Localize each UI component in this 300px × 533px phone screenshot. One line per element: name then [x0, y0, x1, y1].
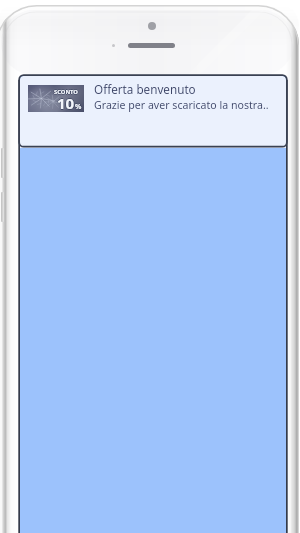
staticText: Offerta benvenuto [94, 81, 196, 97]
staticText: 10 [57, 93, 75, 113]
staticText: SCONTO [54, 88, 78, 96]
staticText: % [74, 102, 81, 112]
staticText: SCONTO [55, 88, 79, 96]
staticText: 10 [57, 94, 75, 114]
staticText: Grazie per aver scaricato la nostra.. [94, 98, 269, 112]
staticText: 10 [57, 92, 75, 112]
staticText: % [76, 102, 83, 112]
staticText: % [75, 102, 82, 112]
staticText: SCONTO [54, 87, 78, 95]
button[interactable]: SCONTO [20, 76, 286, 148]
staticText: 10 [56, 93, 74, 113]
staticText: SCONTO [54, 89, 78, 97]
staticText: % [75, 103, 82, 113]
staticText: SCONTO [53, 88, 77, 96]
staticText: % [75, 101, 82, 111]
staticText: 10 [58, 93, 76, 113]
